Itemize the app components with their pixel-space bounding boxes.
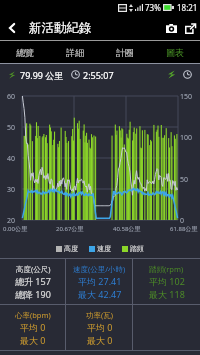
staticText: 最大 0	[20, 334, 46, 346]
staticText: 18:21	[177, 2, 198, 13]
button[interactable]: 速度(公里/小時)	[66, 259, 133, 304]
staticText: 平均 0	[87, 321, 113, 333]
staticText: 40.58公里	[113, 225, 141, 233]
staticText: 50	[180, 175, 189, 185]
staticText: 最大 42.47	[78, 288, 122, 300]
button[interactable]: 心率(bpm)	[0, 305, 66, 350]
staticText: 高度	[64, 244, 78, 253]
staticText: 20.67公里	[56, 225, 84, 233]
staticText: 40	[7, 154, 16, 164]
button[interactable]: Back	[0, 16, 24, 40]
staticText: 2:55:07	[83, 69, 114, 81]
staticText: 60	[7, 92, 16, 102]
staticText: 圖表	[166, 47, 184, 58]
staticText: 速度	[97, 244, 111, 253]
staticText: 總升 157	[15, 275, 51, 287]
staticText: 踏頻	[130, 244, 144, 253]
staticText: 平均 27.41	[78, 275, 122, 287]
staticText: 100	[180, 133, 193, 143]
staticText: 功率(瓦)	[86, 310, 113, 320]
button[interactable]: 圖表	[150, 41, 200, 63]
staticText: 詳細	[66, 47, 84, 58]
staticText: 73%	[145, 2, 161, 13]
staticText: 心率(bpm)	[15, 310, 51, 320]
staticText: 20	[7, 216, 16, 226]
staticText: 30	[7, 185, 16, 195]
button[interactable]: Camera	[162, 19, 180, 37]
staticText: 61.88公里	[170, 225, 198, 233]
button[interactable]: Share	[180, 18, 200, 38]
button[interactable]: 功率(瓦)	[66, 305, 133, 350]
button[interactable]: 計圈	[100, 41, 150, 63]
staticText: 150	[180, 92, 193, 102]
button[interactable]: Speed	[166, 69, 177, 80]
staticText: 高度(公尺)	[16, 264, 51, 274]
staticText: 50	[7, 123, 16, 133]
button[interactable]: 踏頻(rpm)	[133, 259, 200, 304]
staticText: 0	[180, 216, 185, 226]
staticText: 總降 190	[15, 288, 51, 300]
staticText: 平均 102	[149, 275, 185, 287]
staticText: 平均 0	[20, 321, 46, 333]
staticText: 最大 0	[87, 334, 113, 346]
button[interactable]: 高度(公尺)	[0, 259, 66, 304]
staticText: 0.00公里	[3, 225, 27, 233]
staticText: 最大 118	[149, 288, 185, 300]
staticText: 總覽	[16, 47, 34, 58]
button[interactable]: Time	[182, 69, 193, 80]
staticText: 計圈	[116, 47, 134, 58]
staticText: 79.99 公里	[20, 69, 64, 81]
staticText: 速度(公里/小時)	[73, 264, 126, 274]
button[interactable]: 總覽	[0, 41, 50, 63]
staticText: 新活動紀錄	[29, 20, 92, 36]
button[interactable]: 詳細	[50, 41, 100, 63]
staticText: 踏頻(rpm)	[149, 264, 184, 274]
